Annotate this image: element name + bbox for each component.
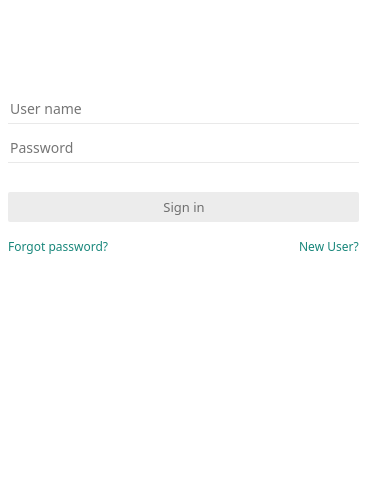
button[interactable]: Forgot password? [8, 238, 109, 254]
button[interactable]: New User? [299, 238, 359, 254]
staticText: Sign in [163, 198, 205, 216]
staticText: Forgot password? [8, 238, 109, 254]
staticText: User name [10, 99, 82, 118]
staticText: New User? [299, 238, 359, 254]
button[interactable]: Password [8, 133, 359, 172]
staticText: Password [10, 138, 74, 157]
button[interactable]: User name [8, 94, 359, 133]
button[interactable]: Sign in [8, 192, 359, 222]
